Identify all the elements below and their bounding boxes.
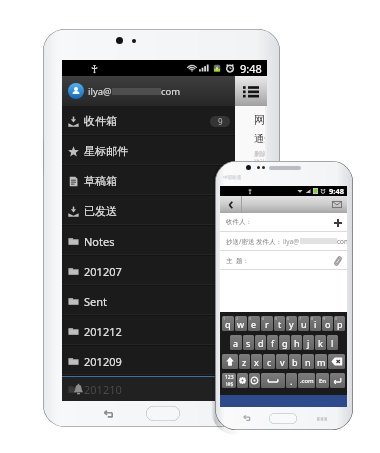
button[interactable]: Emoji (249, 373, 260, 388)
button[interactable]: v (276, 354, 288, 369)
button[interactable]: 草稿箱 (62, 166, 235, 196)
button[interactable]: s (243, 335, 254, 350)
staticText: 9:48 (240, 61, 262, 76)
staticText: 9 (323, 316, 326, 321)
staticText: e (251, 318, 257, 330)
button[interactable]: Menu (235, 76, 267, 106)
button[interactable]: 201210 (62, 377, 235, 401)
button[interactable]: 4 (261, 316, 273, 331)
staticText: 2 (236, 316, 239, 321)
button[interactable]: 已发送 (62, 196, 235, 226)
button[interactable]: 星标邮件 (62, 136, 235, 166)
button[interactable]: z (239, 354, 250, 369)
button[interactable]: Settings (237, 373, 248, 388)
staticText: 5 (275, 316, 278, 321)
button[interactable]: 2 (235, 316, 247, 331)
button[interactable]: Space (261, 373, 285, 388)
button[interactable]: 123 (222, 373, 236, 388)
staticText: 1 (223, 316, 226, 321)
staticText: 7 (299, 316, 302, 321)
staticText: Notes (84, 234, 115, 249)
button[interactable]: c (263, 354, 275, 369)
staticText: 通知 (254, 132, 267, 145)
staticText: 9:48 (329, 186, 344, 196)
button[interactable]: Home (269, 413, 297, 424)
staticText: t (278, 318, 282, 330)
button[interactable]: k (315, 335, 326, 350)
button[interactable]: 收件人： (220, 213, 347, 231)
staticText: 201210 (84, 382, 122, 397)
button[interactable]: 201209 (62, 346, 235, 376)
button[interactable]: Send (329, 196, 345, 213)
button[interactable]: n (302, 354, 314, 369)
button[interactable]: Sent (62, 286, 235, 316)
button[interactable]: 1 (222, 316, 234, 331)
button[interactable]: g (279, 335, 290, 350)
button[interactable]: l (327, 335, 338, 350)
button[interactable]: Back (240, 413, 252, 424)
button[interactable]: 0 (334, 316, 345, 331)
button[interactable]: f (267, 335, 278, 350)
button[interactable]: 6 (286, 316, 297, 331)
button[interactable]: Enter (330, 373, 345, 388)
button[interactable]: En (316, 373, 329, 388)
staticText: 6 (287, 316, 290, 321)
staticText: ilya@ (283, 237, 300, 246)
staticText: En (319, 377, 327, 385)
button[interactable]: Add contact (330, 215, 345, 230)
button[interactable]: a (230, 335, 242, 350)
button[interactable]: 主 题： (220, 251, 347, 269)
staticText: v (280, 356, 285, 368)
button[interactable]: Home (146, 406, 180, 421)
staticText: j (307, 337, 310, 349)
button[interactable]: 7 (298, 316, 309, 331)
staticText: d (258, 337, 264, 349)
button[interactable]: Backspace (328, 354, 345, 369)
staticText: q (225, 318, 231, 330)
staticText: 3 (249, 316, 252, 321)
staticText: 收件箱 (84, 114, 117, 128)
button[interactable]: Menu (316, 414, 328, 423)
button[interactable]: x (251, 354, 262, 369)
staticText: s (246, 337, 251, 349)
staticText: x (254, 356, 259, 368)
button[interactable]: . (286, 373, 297, 388)
button[interactable]: m (315, 354, 327, 369)
button[interactable]: 201212 (62, 316, 235, 346)
button[interactable]: 9 (322, 316, 333, 331)
button[interactable]: Back (101, 408, 115, 420)
button[interactable]: ilya@ (62, 76, 235, 106)
staticText: k (318, 337, 323, 349)
button[interactable]: .com (298, 373, 315, 388)
staticText: b (292, 356, 298, 368)
staticText: l (331, 337, 334, 349)
button[interactable]: j (303, 335, 314, 350)
staticText: m (317, 356, 326, 368)
staticText: 201209 (84, 354, 122, 369)
button[interactable]: 5 (274, 316, 285, 331)
button[interactable]: b (289, 354, 301, 369)
staticText: com (161, 85, 181, 98)
button[interactable]: Shift (222, 354, 238, 369)
button[interactable]: h (291, 335, 302, 350)
button[interactable]: 抄送/密送 发件人： (220, 232, 347, 250)
button[interactable]: 201207 (62, 256, 235, 286)
staticText: g (282, 337, 288, 349)
staticText: 主 题： (226, 256, 249, 265)
staticText: c (267, 356, 272, 368)
button[interactable]: 8 (310, 316, 321, 331)
button[interactable]: Notes (62, 226, 235, 256)
button[interactable]: 3 (248, 316, 260, 331)
staticText: f (271, 337, 275, 349)
button[interactable]: 收件箱 (62, 106, 235, 136)
button[interactable]: Attach file (330, 253, 345, 268)
staticText: !#$ (226, 381, 234, 388)
button[interactable]: d (255, 335, 266, 350)
staticText: 收件人： (226, 218, 252, 226)
staticText: u (301, 318, 307, 330)
staticText: . (290, 375, 293, 387)
staticText: 星标邮件 (84, 144, 128, 158)
staticText: 确认提示 (254, 158, 267, 166)
button[interactable]: Back (220, 196, 241, 213)
